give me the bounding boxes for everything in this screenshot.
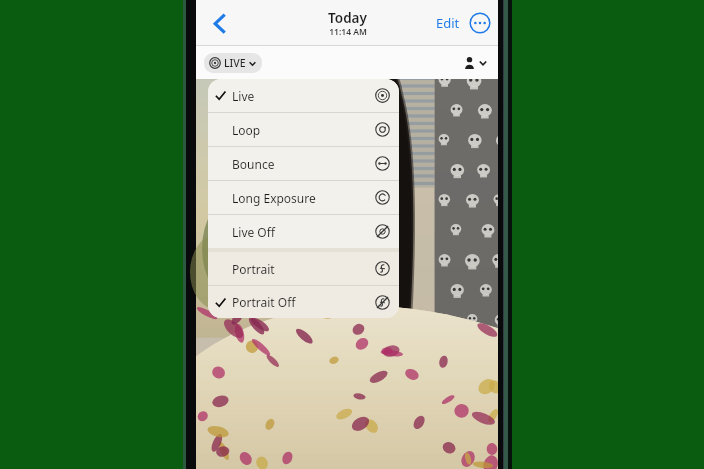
staticText: Long Exposure: [232, 190, 316, 206]
button[interactable]: Live: [208, 79, 399, 112]
button[interactable]: Loop: [208, 113, 399, 146]
staticText: 11:14 AM: [329, 26, 367, 38]
staticText: LIVE: [224, 56, 246, 70]
staticText: Edit: [436, 14, 460, 32]
button[interactable]: LIVE: [204, 53, 262, 73]
button[interactable]: Portrait Off: [208, 286, 399, 318]
button[interactable]: People: [461, 54, 490, 71]
button[interactable]: Portrait: [208, 252, 399, 285]
staticText: Loop: [232, 122, 261, 138]
button[interactable]: Bounce: [208, 147, 399, 180]
button[interactable]: Edit: [433, 10, 463, 36]
staticText: Today: [328, 9, 367, 27]
button[interactable]: Back: [202, 6, 236, 40]
staticText: Portrait: [232, 261, 275, 277]
button[interactable]: Long Exposure: [208, 181, 399, 214]
button[interactable]: Live Off: [208, 215, 399, 248]
staticText: Live: [232, 88, 255, 104]
button[interactable]: More options: [469, 12, 491, 34]
staticText: Bounce: [232, 156, 275, 172]
staticText: Portrait Off: [232, 294, 296, 310]
staticText: Live Off: [232, 224, 275, 240]
